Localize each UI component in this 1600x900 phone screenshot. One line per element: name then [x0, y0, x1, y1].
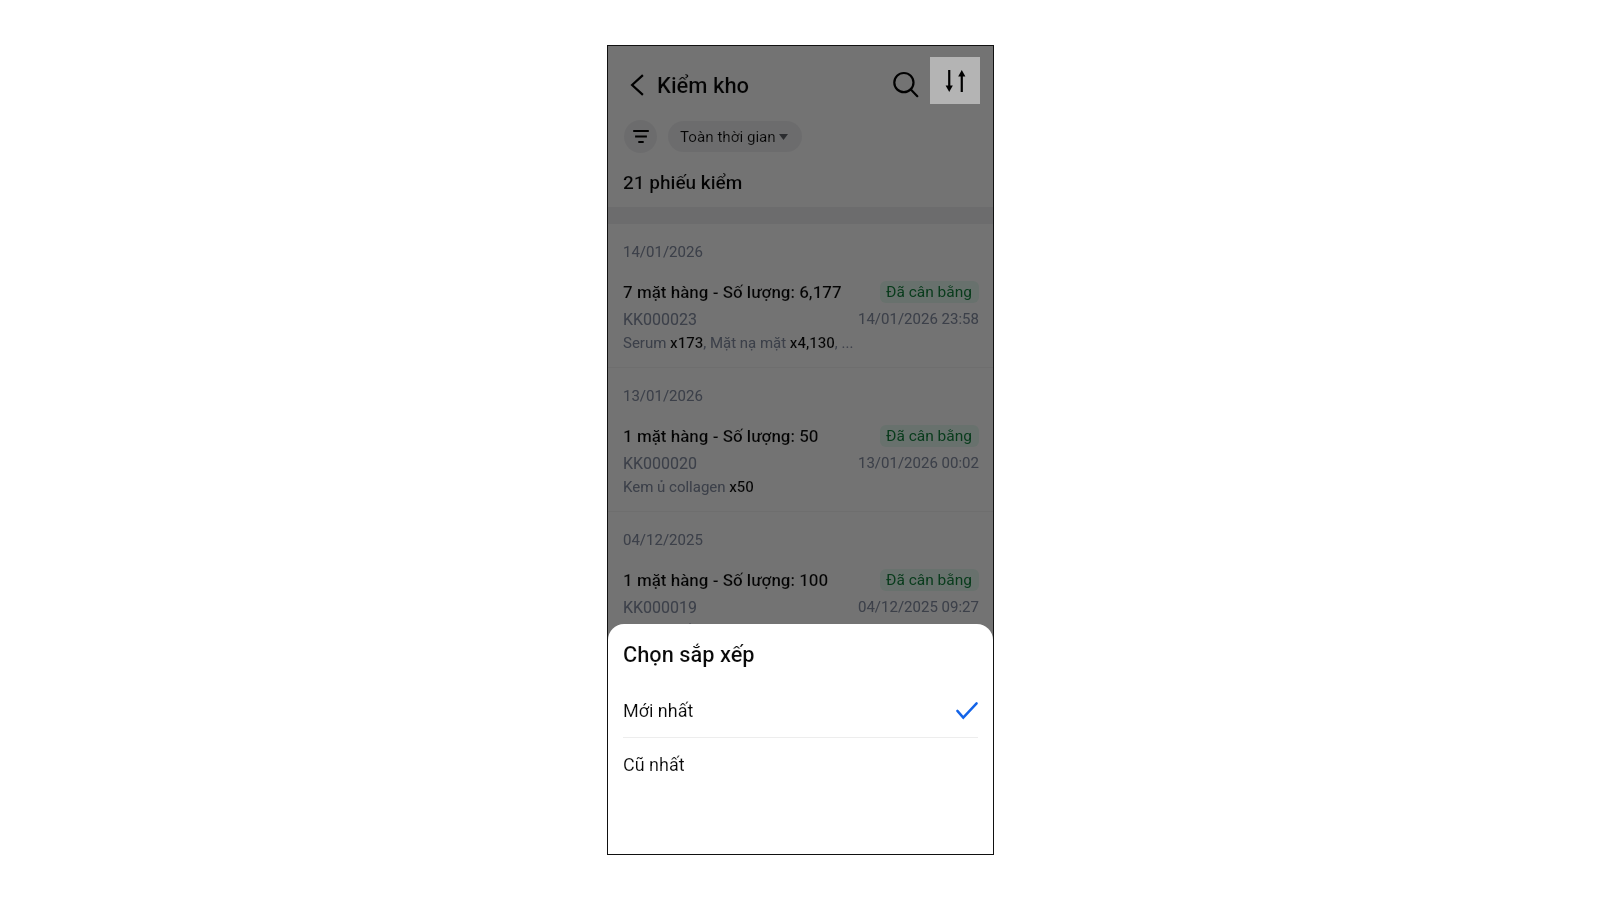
staticText: Mặt nạ đất sét x100 — [623, 622, 757, 640]
button[interactable]: Toàn thời gian — [668, 121, 802, 152]
button[interactable]: Filter — [624, 120, 657, 153]
staticText: Serum x173, Mặt nạ mặt x4,130, ... — [623, 334, 854, 352]
button[interactable]: Cũ nhất — [608, 748, 993, 781]
staticText: KK000019 — [623, 598, 698, 617]
button[interactable]: Search — [884, 62, 930, 108]
staticText: Đã cân bằng — [886, 571, 973, 589]
button[interactable]: Back — [617, 65, 657, 105]
staticText: 7 mặt hàng - Số lượng: 6,177 — [623, 282, 842, 302]
button[interactable]: Mới nhất — [608, 694, 993, 727]
staticText: 04/12/2025 — [623, 531, 703, 549]
staticText: Mới nhất — [623, 700, 694, 721]
staticText: 13/01/2026 — [623, 387, 703, 405]
staticText: Kiểm kho — [657, 73, 750, 99]
staticText: Đã cân bằng — [886, 283, 973, 301]
staticText: 13/01/2026 00:02 — [858, 454, 979, 472]
staticText: KK000020 — [623, 454, 698, 473]
staticText: Cũ nhất — [623, 754, 685, 775]
staticText: KK000023 — [623, 310, 698, 329]
staticText: Toàn thời gian — [680, 128, 776, 146]
staticText: 14/01/2026 — [623, 243, 703, 261]
button[interactable]: 04/12/2025 — [608, 512, 993, 655]
staticText: Đã cân bằng — [886, 427, 973, 445]
staticText: 14/01/2026 23:58 — [858, 310, 979, 328]
staticText: 04/12/2025 09:27 — [858, 598, 979, 616]
button[interactable]: 13/01/2026 — [608, 368, 993, 511]
staticText: 21 phiếu kiểm — [623, 171, 743, 193]
staticText: 1 mặt hàng - Số lượng: 50 — [623, 426, 819, 446]
button[interactable]: 14/01/2026 — [608, 224, 993, 367]
staticText: Kem ủ collagen x50 — [623, 478, 754, 496]
button[interactable]: Sort — [930, 57, 980, 104]
staticText: 1 mặt hàng - Số lượng: 100 — [623, 570, 829, 590]
staticText: Chọn sắp xếp — [623, 642, 755, 668]
